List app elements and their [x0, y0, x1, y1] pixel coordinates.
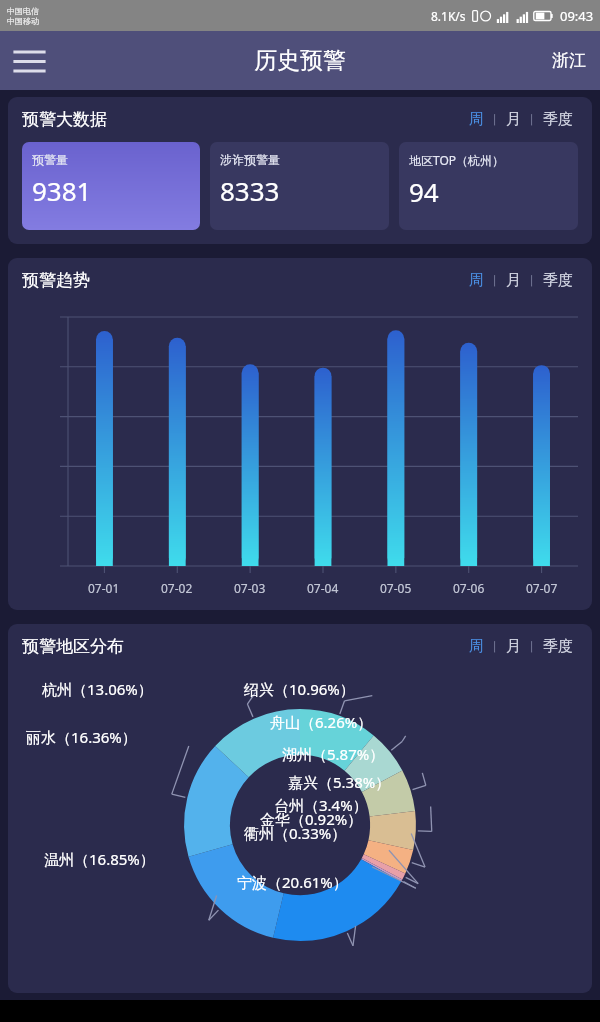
staticText: 07-04: [307, 580, 339, 596]
staticText: 绍兴（10.96%）: [244, 679, 355, 699]
button[interactable]: 季度: [538, 271, 578, 290]
staticText: 丨: [526, 112, 538, 127]
button[interactable]: 月: [501, 637, 526, 656]
staticText: 金华（0.92%）: [260, 809, 363, 829]
button[interactable]: 周: [464, 271, 489, 290]
staticText: 地区TOP（杭州）: [409, 152, 505, 168]
staticText: 周: [469, 271, 484, 290]
staticText: 舟山（6.26%）: [270, 712, 373, 732]
staticText: 周: [469, 637, 484, 656]
button[interactable]: 季度: [538, 110, 578, 129]
staticText: 中国移动: [7, 16, 39, 26]
staticText: 预警地区分布: [22, 636, 124, 657]
staticText: 台州（3.4%）: [274, 795, 368, 815]
staticText: 07-07: [526, 580, 558, 596]
staticText: 09:43: [560, 7, 594, 25]
staticText: 07-05: [380, 580, 412, 596]
staticText: 9381: [32, 173, 92, 208]
staticText: 丨: [526, 273, 538, 288]
button[interactable]: Menu: [6, 38, 52, 84]
staticText: 季度: [543, 637, 573, 656]
staticText: 衢州（0.33%）: [244, 823, 347, 843]
button[interactable]: 涉诈预警量: [210, 142, 389, 230]
staticText: 周: [469, 110, 484, 129]
button[interactable]: 周: [464, 637, 489, 656]
staticText: 丨: [489, 273, 501, 288]
staticText: 中国电信: [7, 6, 39, 16]
staticText: 浙江: [552, 50, 586, 71]
staticText: 07-03: [234, 580, 266, 596]
staticText: 预警趋势: [22, 270, 90, 291]
staticText: 600: [43, 466, 64, 467]
staticText: 季度: [543, 271, 573, 290]
staticText: 涉诈预警量: [220, 152, 280, 167]
staticText: 月: [506, 637, 521, 656]
staticText: 07-06: [453, 580, 485, 596]
staticText: 宁波（20.61%）: [237, 872, 348, 892]
button[interactable]: 地区TOP（杭州）: [399, 142, 578, 230]
button[interactable]: 周: [464, 110, 489, 129]
button[interactable]: 浙江: [538, 36, 600, 85]
staticText: 8333: [220, 173, 280, 208]
staticText: 94: [409, 174, 439, 209]
button[interactable]: 季度: [538, 637, 578, 656]
staticText: 季度: [543, 110, 573, 129]
staticText: 预警大数据: [22, 109, 107, 130]
staticText: 丨: [489, 112, 501, 127]
staticText: 月: [506, 271, 521, 290]
staticText: 湖州（5.87%）: [282, 744, 385, 764]
button[interactable]: 月: [501, 110, 526, 129]
staticText: 07-01: [88, 580, 120, 596]
staticText: 温州（16.85%）: [44, 849, 155, 869]
button[interactable]: 月: [501, 271, 526, 290]
button[interactable]: 预警量: [22, 142, 200, 230]
staticText: 预警量: [32, 152, 68, 167]
staticText: 丽水（16.36%）: [26, 727, 137, 747]
staticText: 8.1K/s: [431, 8, 466, 24]
staticText: 历史预警: [254, 46, 346, 75]
staticText: 嘉兴（5.38%）: [288, 772, 391, 792]
staticText: 07-02: [161, 580, 193, 596]
staticText: 丨: [489, 639, 501, 654]
staticText: 杭州（13.06%）: [42, 679, 153, 699]
staticText: 月: [506, 110, 521, 129]
staticText: 丨: [526, 639, 538, 654]
